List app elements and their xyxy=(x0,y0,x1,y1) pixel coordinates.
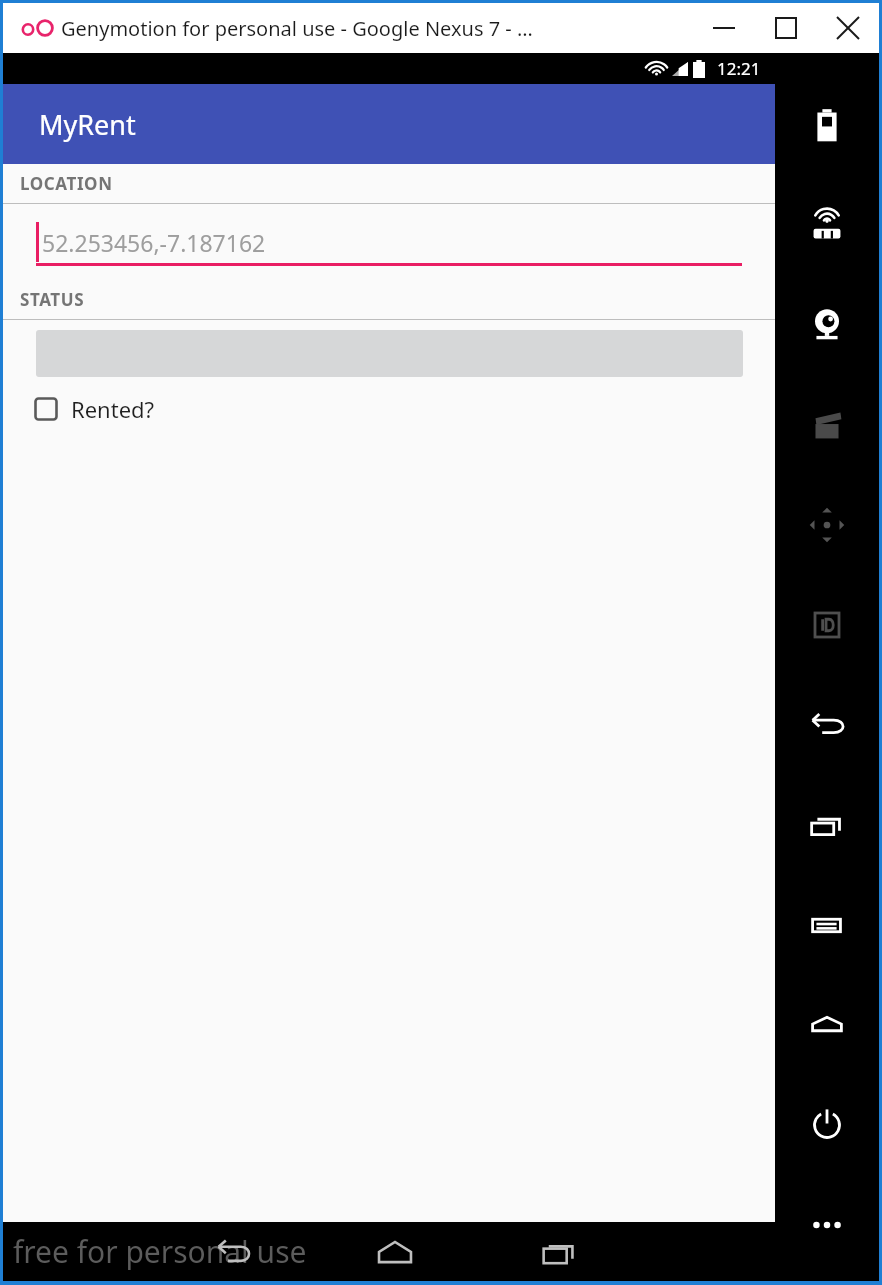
staticText: LOCATION xyxy=(20,172,113,195)
button[interactable]: D-pad xyxy=(775,475,879,575)
staticText: Rented? xyxy=(71,394,155,424)
button[interactable]: More xyxy=(775,1175,879,1275)
staticText: Genymotion for personal use - Google Nex… xyxy=(61,15,533,42)
button[interactable]: Power xyxy=(775,1075,879,1175)
button[interactable]: Identifiers xyxy=(775,575,879,675)
button[interactable]: 52.253456,-7.187162 xyxy=(3,204,775,280)
button[interactable]: Menu xyxy=(775,875,879,975)
staticText: 12:21 xyxy=(717,57,761,80)
button[interactable]: Record xyxy=(775,375,879,475)
button[interactable]: Close xyxy=(817,3,879,53)
button[interactable]: Maximize xyxy=(755,3,817,53)
button[interactable]: Back xyxy=(201,1222,265,1281)
button[interactable]: Rented? xyxy=(33,387,155,431)
button[interactable]: Recent apps xyxy=(775,775,879,875)
button[interactable]: Back xyxy=(775,675,879,775)
button[interactable]: Recent apps xyxy=(527,1222,591,1281)
staticText: free for personal use xyxy=(13,1231,307,1272)
button[interactable]: Minimize xyxy=(693,3,755,53)
button[interactable]: Home xyxy=(363,1222,427,1281)
button[interactable]: Camera xyxy=(775,275,879,375)
button[interactable]: Battery xyxy=(775,75,879,175)
staticText: 52.253456,-7.187162 xyxy=(42,227,266,258)
staticText: STATUS xyxy=(20,288,85,311)
button[interactable]: Home xyxy=(775,975,879,1075)
button[interactable]: GPS xyxy=(775,175,879,275)
staticText: MyRent xyxy=(39,106,136,143)
